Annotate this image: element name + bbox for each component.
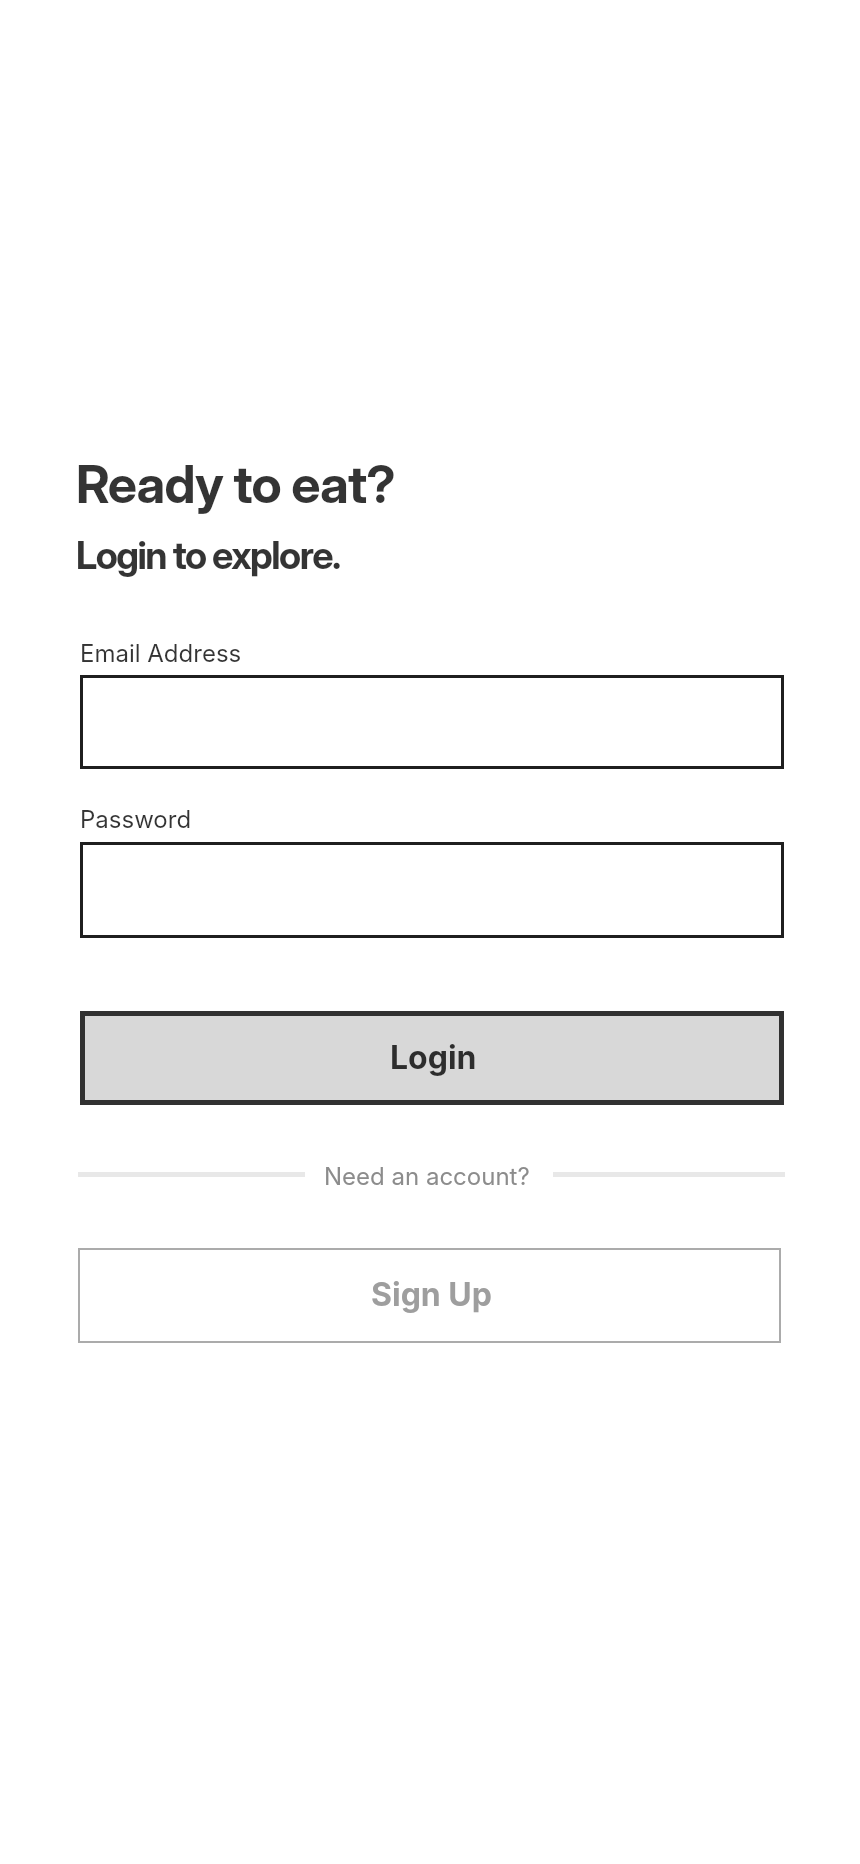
staticText: Login [390,1038,477,1077]
staticText: Sign Up [371,1275,492,1314]
staticText: Login to explore. [76,532,340,578]
staticText: Password [80,805,192,834]
staticText: Ready to eat? [76,453,395,516]
staticText: Need an account? [324,1162,530,1191]
staticText: Email Address [80,639,242,668]
